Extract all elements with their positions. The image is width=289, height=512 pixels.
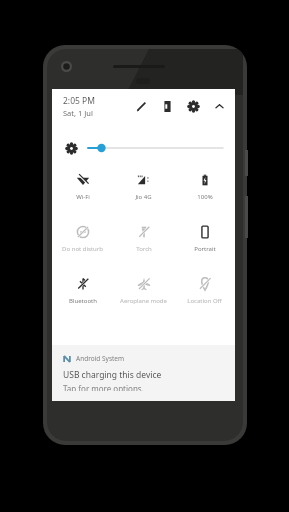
staticText: Wi-Fi	[76, 193, 90, 201]
button[interactable]: Settings	[185, 98, 201, 114]
button[interactable]: Torch	[113, 223, 174, 255]
staticText: USB charging this device	[63, 369, 162, 381]
staticText: 100%	[197, 193, 213, 201]
button[interactable]: Wi-Fi	[52, 171, 113, 203]
staticText: Jio 4G	[135, 193, 152, 201]
button[interactable]: Edit	[133, 98, 149, 114]
button[interactable]: Jio 4G	[113, 171, 174, 203]
button[interactable]: Brightness	[88, 140, 223, 156]
staticText: Aeroplane mode	[120, 297, 167, 305]
staticText: Portrait	[194, 245, 216, 253]
button[interactable]: Collapse	[211, 98, 227, 114]
button[interactable]: SIM cards	[159, 98, 175, 114]
button[interactable]: Android System	[52, 345, 235, 401]
staticText: Android System	[76, 354, 125, 363]
staticText: Tap for more options.	[63, 383, 144, 391]
button[interactable]: Location Off	[174, 275, 235, 307]
button[interactable]: Aeroplane mode	[113, 275, 174, 307]
staticText: Do not disturb	[62, 245, 103, 253]
button[interactable]: Auto brightness	[63, 140, 79, 156]
button[interactable]: 100%	[174, 171, 235, 203]
staticText: Location Off	[187, 297, 222, 305]
button[interactable]: Bluetooth	[52, 275, 113, 307]
staticText: Sat, 1 Jul	[63, 108, 93, 118]
staticText: 2:05 PM	[63, 95, 95, 107]
staticText: Bluetooth	[69, 297, 97, 305]
button[interactable]: Portrait	[174, 223, 235, 255]
staticText: Torch	[136, 245, 152, 253]
button[interactable]: Do not disturb	[52, 223, 113, 255]
